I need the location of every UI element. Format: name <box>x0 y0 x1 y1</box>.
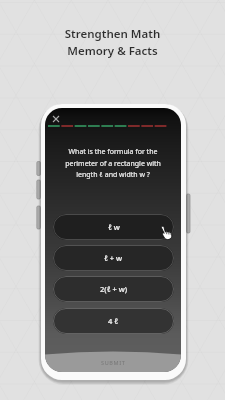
button[interactable]: ℓ w <box>53 214 174 240</box>
staticText: ℓ w <box>108 222 120 232</box>
staticText: SUBMIT <box>101 359 126 366</box>
staticText: What is the formula for the perimeter of… <box>45 147 181 179</box>
staticText: 2(ℓ + w) <box>100 284 128 294</box>
button[interactable]: SUBMIT <box>45 352 181 372</box>
button[interactable]: Close <box>50 113 61 124</box>
button[interactable]: 4 ℓ <box>53 308 174 334</box>
staticText: Strengthen Math Memory & Facts <box>0 26 225 59</box>
button[interactable]: ℓ + w <box>53 245 174 271</box>
staticText: 4 ℓ <box>108 316 119 326</box>
button[interactable]: 2(ℓ + w) <box>53 276 174 302</box>
staticText: ℓ + w <box>104 253 123 263</box>
